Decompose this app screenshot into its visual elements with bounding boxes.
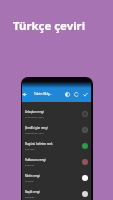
button[interactable]: Done: [83, 92, 88, 97]
staticText: Takvim Widg...: [34, 92, 52, 96]
button[interactable]: Toggle contrast: [65, 92, 70, 97]
button[interactable]: Bugünü belirten renk: [22, 138, 91, 154]
button[interactable]: Haftasonu rengi: [22, 154, 91, 170]
button[interactable]: Arkaplan rengi: [22, 106, 91, 122]
staticText: Başlık rengi: [25, 190, 40, 194]
staticText: #1F303030 (79%): [25, 115, 44, 118]
button[interactable]: Metin rengi: [22, 170, 91, 186]
staticText: #4CAF50: [25, 147, 35, 150]
staticText: #9E5C5C: [25, 163, 35, 166]
staticText: #FFFFFF: [25, 179, 34, 182]
button[interactable]: Başlık rengi: [22, 186, 91, 200]
staticText: Şimdiki gün rengi: [25, 126, 48, 130]
staticText: #E0E0E0: [25, 195, 35, 198]
button[interactable]: Back: [22, 92, 27, 97]
button[interactable]: Reset: [74, 92, 79, 97]
staticText: #5F505050 (79%): [25, 131, 44, 134]
staticText: Türkçe çeviri: [13, 18, 86, 34]
staticText: Metin rengi: [25, 174, 40, 178]
button[interactable]: Şimdiki gün rengi: [22, 122, 91, 138]
staticText: Bugünü belirten renk: [25, 142, 53, 146]
staticText: Arkaplan rengi: [25, 110, 44, 114]
staticText: Haftasonu rengi: [25, 158, 46, 162]
